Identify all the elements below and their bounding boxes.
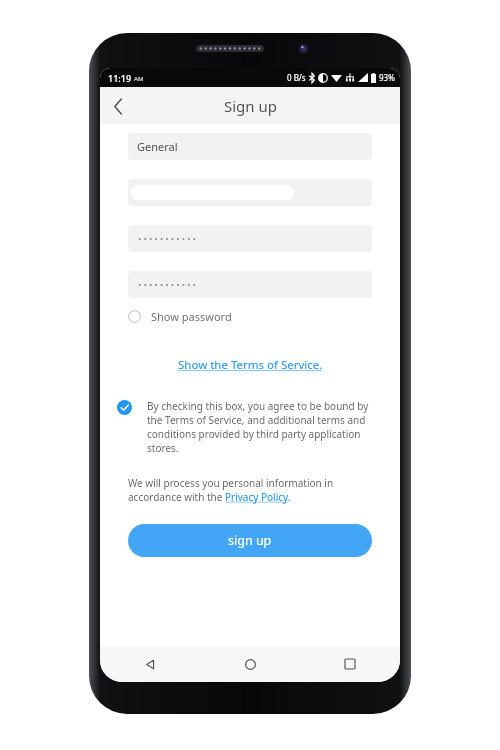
button[interactable]: We will process you personal information… xyxy=(128,476,372,504)
button[interactable]: Show the Terms of Service. xyxy=(128,357,372,373)
button[interactable]: By checking this box, you agree to be bo… xyxy=(128,399,372,455)
staticText: Sign up xyxy=(224,96,277,116)
staticText: Show the Terms of Service. xyxy=(178,357,323,373)
button[interactable]: sign up xyxy=(128,524,372,557)
button[interactable]: Home xyxy=(200,646,300,682)
staticText: 93% xyxy=(379,72,395,83)
staticText: By checking this box, you agree to be bo… xyxy=(147,399,372,455)
staticText: AM xyxy=(134,75,144,83)
staticText: 11:19 xyxy=(108,72,132,84)
staticText: General xyxy=(137,139,178,154)
button[interactable]: Back xyxy=(100,88,136,124)
button[interactable]: Show password xyxy=(128,304,372,329)
button[interactable] xyxy=(128,225,372,252)
staticText: sign up xyxy=(228,532,272,549)
button[interactable]: Recent apps xyxy=(300,646,400,682)
button[interactable] xyxy=(128,179,372,206)
button[interactable]: General xyxy=(128,133,372,160)
staticText: Show password xyxy=(151,309,232,324)
staticText: 0 B/s xyxy=(287,72,306,83)
button[interactable] xyxy=(128,271,372,298)
button[interactable]: Back xyxy=(100,646,200,682)
